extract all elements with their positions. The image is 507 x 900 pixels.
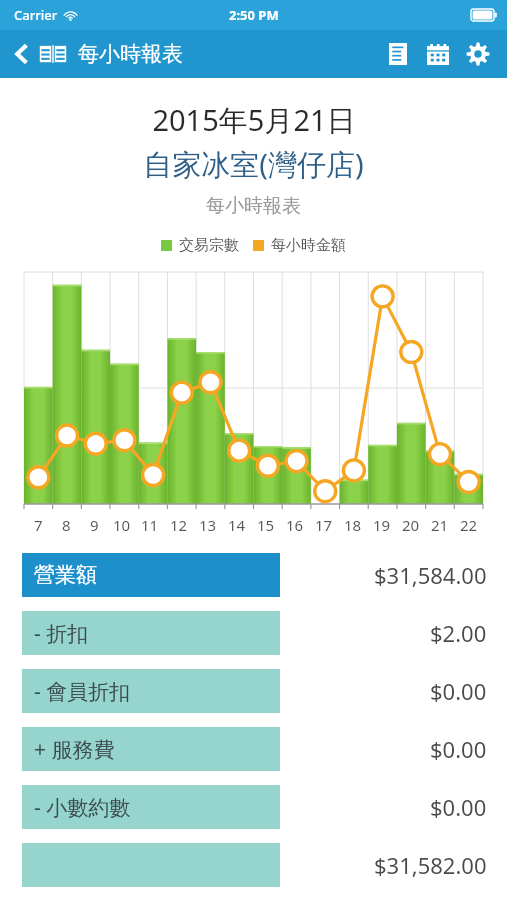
staticText: 7 [34,515,43,535]
staticText: Carrier [14,6,58,24]
staticText: $2.00 [430,618,487,648]
staticText: 17 [315,515,333,535]
staticText: $0.00 [430,792,487,822]
staticText: 15 [257,515,275,535]
staticText: 20 [402,515,420,535]
staticText: - 小數約數 [34,793,131,822]
staticText: 營業額 [34,562,97,588]
button[interactable]: Back [12,41,183,67]
staticText: 交易宗數 [179,236,239,255]
button[interactable]: Settings [463,39,493,69]
staticText: - 會員折扣 [34,677,131,706]
button[interactable]: + 服務費 [0,727,507,771]
staticText: 11 [141,515,159,535]
button[interactable]: Calendar [423,39,453,69]
staticText: 自家冰室(灣仔店) [143,144,364,184]
button[interactable]: - 折扣 [0,611,507,655]
staticText: 每小時金額 [271,236,346,255]
staticText: $0.00 [430,734,487,764]
button[interactable]: - 會員折扣 [0,669,507,713]
staticText: 12 [170,515,188,535]
staticText: 2:50 PM [229,6,279,24]
button[interactable]: 營業額 [0,553,507,597]
staticText: + 服務費 [34,735,115,764]
staticText: 2015年5月21日 [152,100,356,140]
button[interactable]: - 小數約數 [0,785,507,829]
staticText: $31,584.00 [374,560,487,590]
staticText: $0.00 [430,676,487,706]
staticText: 21 [431,515,449,535]
staticText: 13 [199,515,217,535]
button[interactable]: $31,582.00 [0,843,507,887]
staticText: 每小時報表 [78,41,183,67]
staticText: 22 [460,515,478,535]
staticText: 14 [228,515,246,535]
staticText: 8 [62,515,71,535]
staticText: 10 [113,515,131,535]
staticText: - 折扣 [34,619,89,648]
staticText: 18 [344,515,362,535]
staticText: 9 [90,515,99,535]
staticText: $31,582.00 [374,850,487,880]
button[interactable]: Report [383,39,413,69]
staticText: 16 [286,515,304,535]
staticText: 每小時報表 [206,194,301,218]
staticText: 19 [373,515,391,535]
